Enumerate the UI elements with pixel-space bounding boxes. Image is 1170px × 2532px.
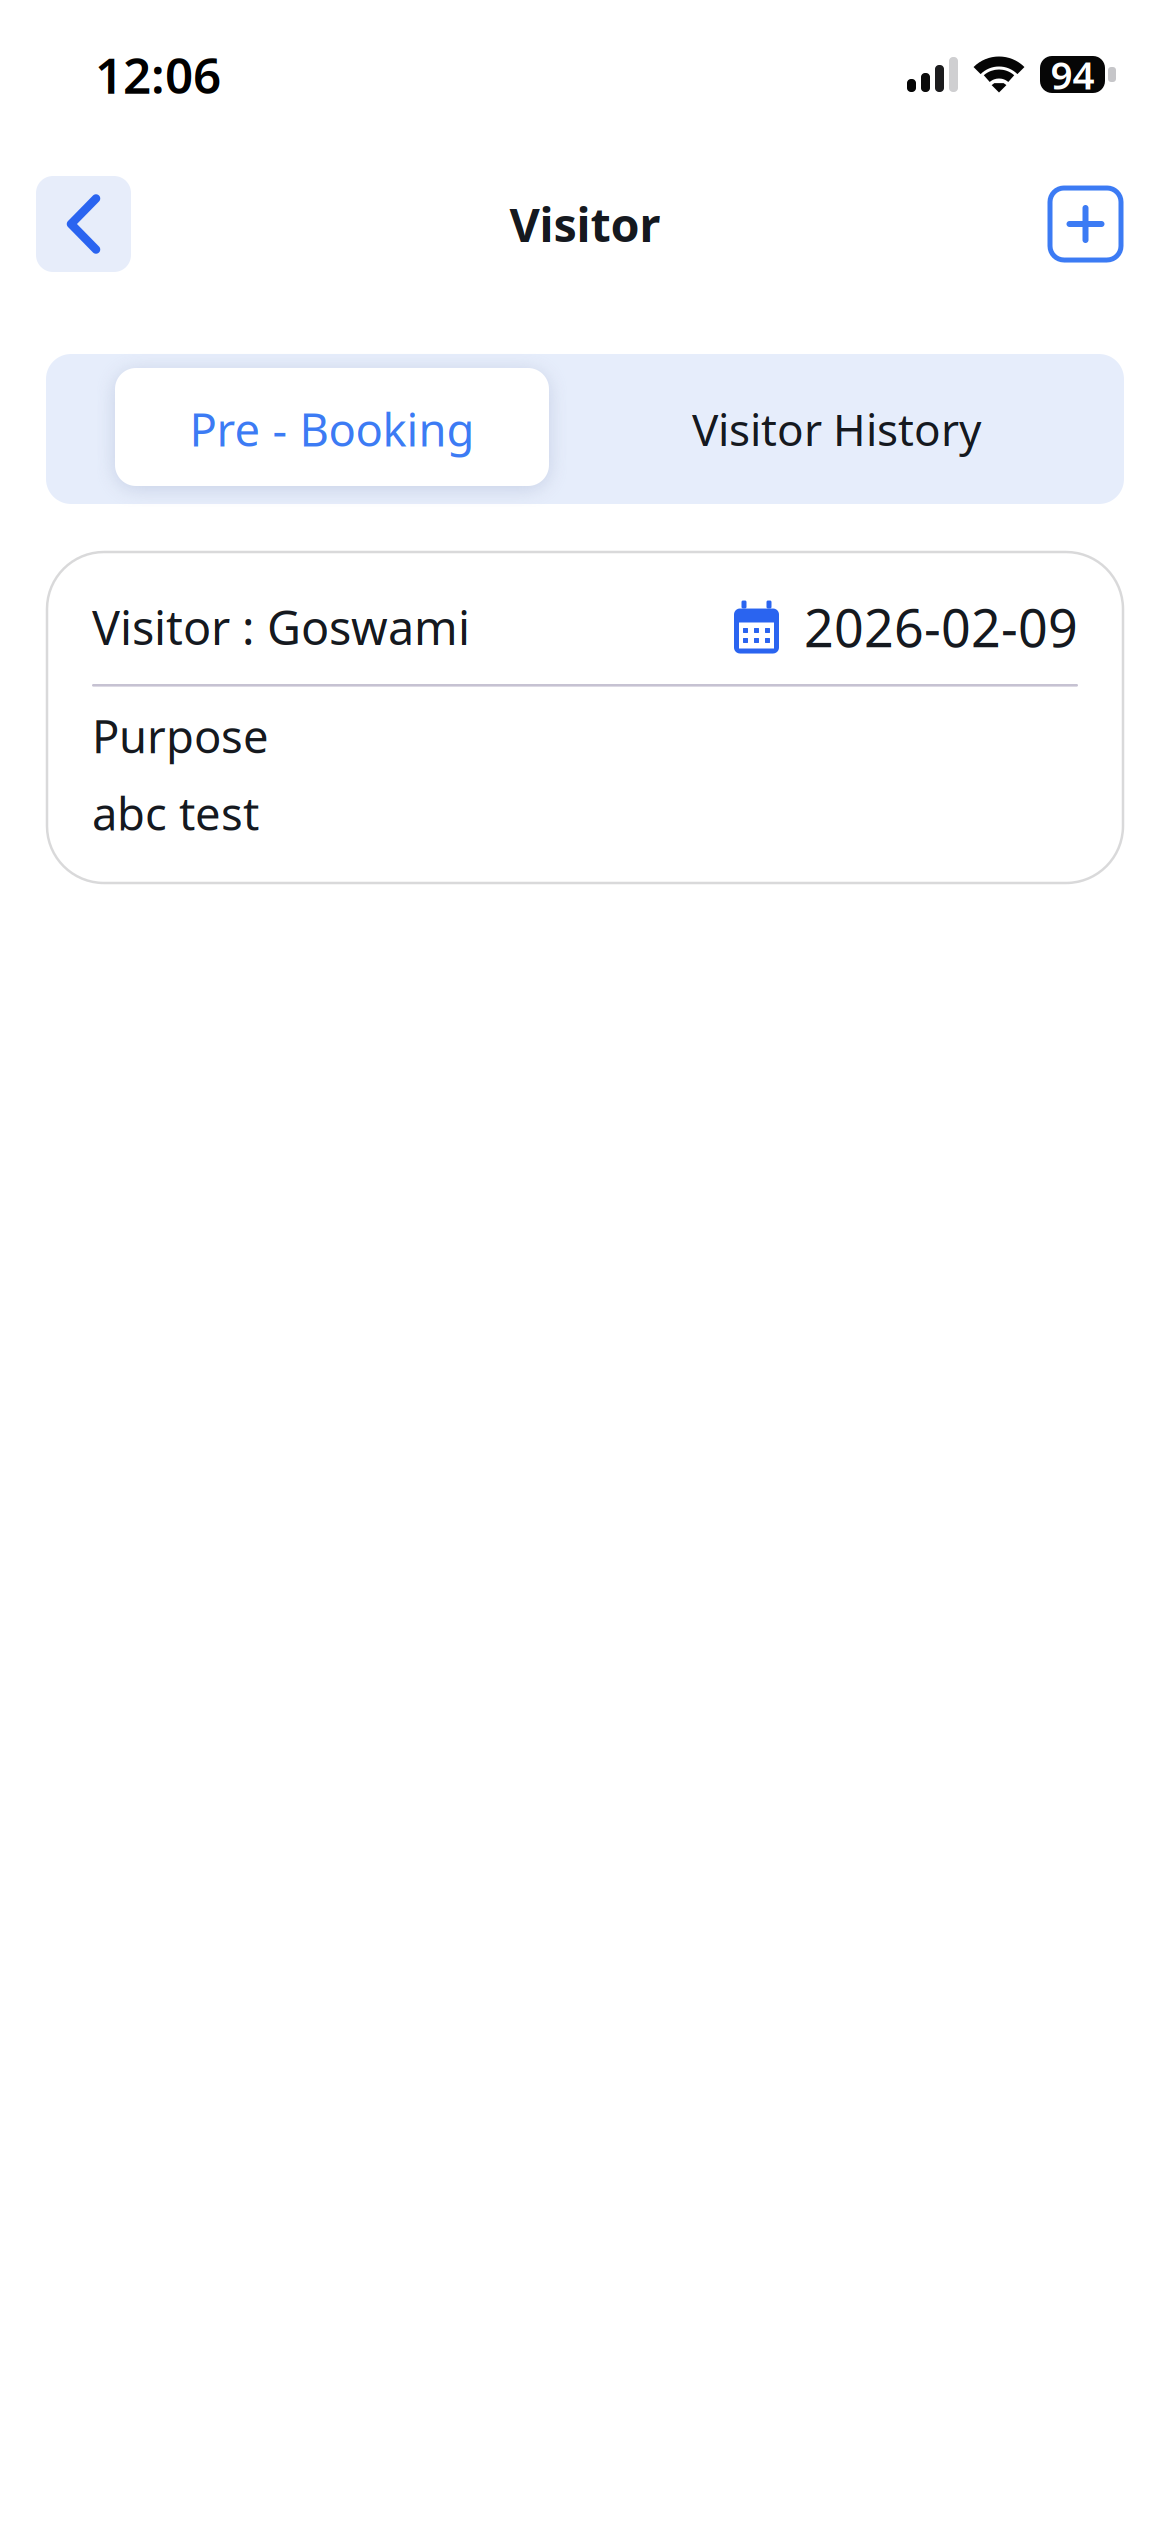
staticText: Visitor xyxy=(509,193,660,255)
button[interactable]: Back xyxy=(36,176,131,272)
staticText: Pre - Booking xyxy=(189,399,474,459)
staticText: Purpose xyxy=(92,706,269,766)
staticText: abc test xyxy=(92,783,259,843)
staticText: Visitor History xyxy=(692,400,981,458)
staticText: Visitor : Goswami xyxy=(92,596,470,658)
staticText: 94 xyxy=(1050,49,1094,100)
button[interactable]: Pre - Booking xyxy=(115,354,549,504)
button[interactable]: 2026-02-09 xyxy=(734,592,1078,662)
staticText: 2026-02-09 xyxy=(804,592,1078,662)
button[interactable]: Visitor History xyxy=(549,370,1124,487)
button[interactable]: Add visitor xyxy=(1050,188,1121,260)
staticText: 12:06 xyxy=(95,42,221,107)
